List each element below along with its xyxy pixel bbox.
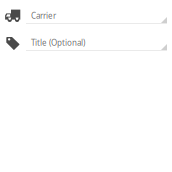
button[interactable]: Carrier <box>0 0 172 24</box>
staticText: Carrier <box>31 10 56 21</box>
button[interactable]: Title (Optional) <box>0 24 172 51</box>
staticText: Title (Optional) <box>31 37 85 48</box>
